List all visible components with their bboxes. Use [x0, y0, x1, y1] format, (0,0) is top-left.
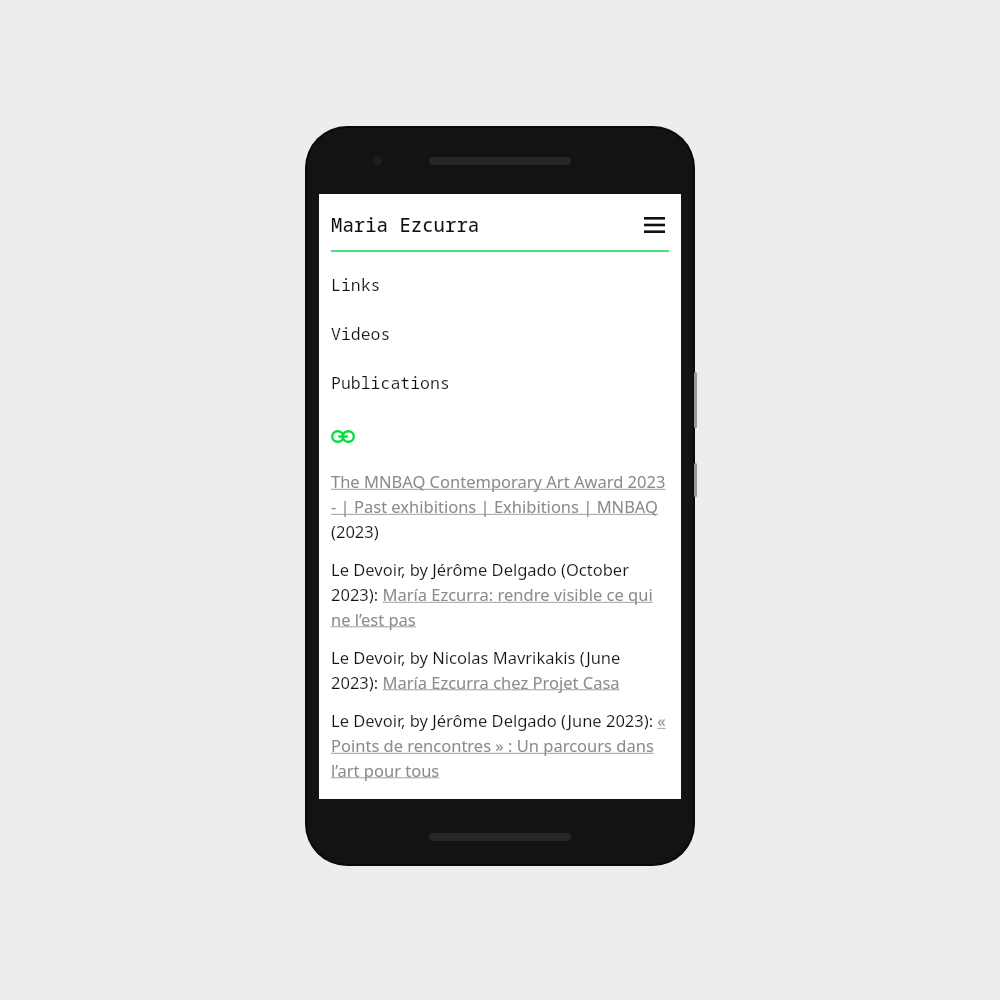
- staticText: Publications: [331, 371, 450, 393]
- staticText: Videos: [331, 322, 391, 344]
- button[interactable]: Link: [331, 426, 357, 446]
- button[interactable]: Le Devoir, by Jérôme Delgado (October 20…: [331, 558, 669, 630]
- button[interactable]: Videos: [331, 315, 669, 351]
- button[interactable]: Le Devoir, by Nicolas Mavrikakis (June 2…: [331, 646, 669, 693]
- button[interactable]: Maria Ezcurra: [331, 212, 639, 238]
- button[interactable]: Le Devoir, by Jérôme Delgado (June 2023)…: [331, 709, 669, 781]
- staticText: Le Devoir, by Nicolas Mavrikakis (June 2…: [331, 646, 669, 693]
- staticText: Le Devoir, by Jérôme Delgado (October 20…: [331, 558, 669, 630]
- staticText: The MNBAQ Contemporary Art Award 2023 - …: [331, 470, 669, 542]
- button[interactable]: Open menu: [639, 210, 669, 240]
- staticText: Maria Ezcurra: [331, 212, 480, 238]
- button[interactable]: Publications: [331, 364, 669, 400]
- staticText: Links: [331, 273, 381, 295]
- staticText: Le Devoir, by Jérôme Delgado (June 2023)…: [331, 709, 669, 781]
- button[interactable]: Links: [331, 266, 669, 302]
- button[interactable]: The MNBAQ Contemporary Art Award 2023 - …: [331, 470, 669, 542]
